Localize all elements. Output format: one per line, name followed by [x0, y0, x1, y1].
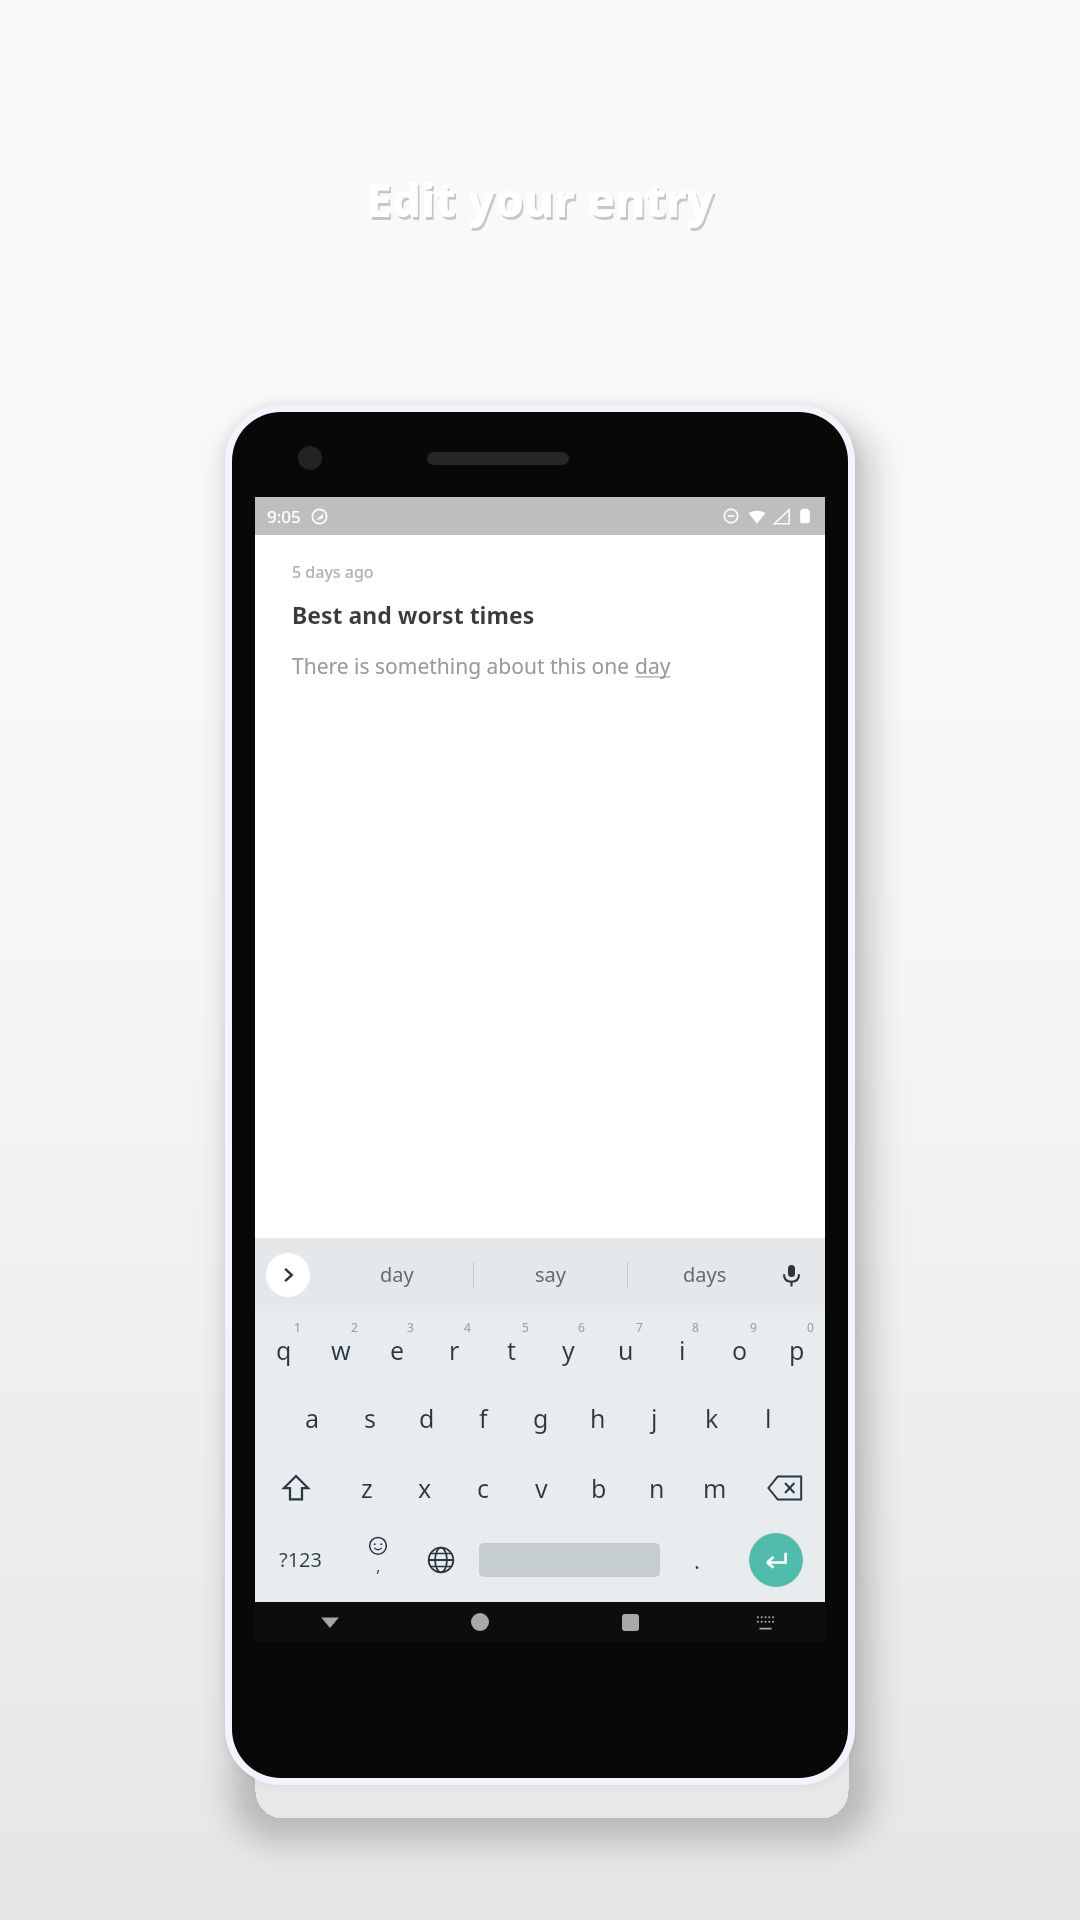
- staticText: 5 days ago: [292, 561, 374, 583]
- staticText: days: [683, 1261, 727, 1288]
- staticText: 1: [294, 1319, 301, 1335]
- button[interactable]: t: [483, 1317, 540, 1383]
- button[interactable]: day: [321, 1238, 473, 1311]
- button[interactable]: .: [667, 1523, 727, 1596]
- staticText: Edit your entry: [368, 171, 716, 234]
- button[interactable]: d: [398, 1383, 455, 1453]
- button[interactable]: More suggestions: [266, 1253, 310, 1297]
- staticText: m: [703, 1471, 727, 1505]
- button[interactable]: say: [474, 1238, 627, 1311]
- staticText: z: [361, 1471, 373, 1505]
- staticText: 2: [351, 1319, 358, 1335]
- button[interactable]: Recent apps: [555, 1602, 705, 1642]
- staticText: i: [679, 1333, 686, 1367]
- button[interactable]: q: [255, 1317, 312, 1383]
- button[interactable]: j: [626, 1383, 683, 1453]
- button[interactable]: days: [628, 1238, 781, 1311]
- button[interactable]: m: [686, 1453, 744, 1523]
- button[interactable]: v: [512, 1453, 570, 1523]
- staticText: 7: [636, 1319, 643, 1335]
- staticText: g: [533, 1401, 549, 1435]
- staticText: v: [535, 1471, 548, 1505]
- staticText: a: [305, 1401, 320, 1435]
- button[interactable]: f: [455, 1383, 512, 1453]
- staticText: y: [562, 1333, 575, 1367]
- button[interactable]: w: [312, 1317, 369, 1383]
- staticText: 9:05: [267, 505, 301, 528]
- button[interactable]: k: [683, 1383, 740, 1453]
- staticText: 6: [578, 1319, 585, 1335]
- staticText: t: [507, 1333, 517, 1367]
- staticText: Best and worst times: [292, 599, 535, 630]
- staticText: k: [705, 1401, 719, 1435]
- button[interactable]: n: [628, 1453, 686, 1523]
- staticText: ?123: [279, 1546, 322, 1573]
- staticText: 0: [807, 1319, 814, 1335]
- button[interactable]: Space: [472, 1523, 667, 1596]
- button[interactable]: h: [569, 1383, 626, 1453]
- staticText: day: [635, 652, 671, 681]
- staticText: o: [732, 1333, 748, 1367]
- button[interactable]: p: [768, 1317, 825, 1383]
- staticText: 4: [464, 1319, 471, 1335]
- button[interactable]: Shift: [255, 1453, 337, 1523]
- button[interactable]: Voice input: [771, 1255, 811, 1295]
- button[interactable]: z: [337, 1453, 396, 1523]
- button[interactable]: l: [740, 1383, 797, 1453]
- staticText: 9: [750, 1319, 757, 1335]
- button[interactable]: o: [711, 1317, 768, 1383]
- staticText: x: [418, 1471, 432, 1505]
- button[interactable]: Enter: [727, 1523, 825, 1596]
- staticText: d: [419, 1401, 435, 1435]
- button[interactable]: Switch input method: [705, 1602, 825, 1642]
- staticText: Edit your entry: [366, 168, 714, 231]
- button[interactable]: r: [426, 1317, 483, 1383]
- staticText: h: [590, 1401, 606, 1435]
- button[interactable]: Home: [405, 1602, 555, 1642]
- button[interactable]: g: [512, 1383, 569, 1453]
- button[interactable]: x: [396, 1453, 454, 1523]
- staticText: w: [331, 1333, 351, 1367]
- staticText: say: [535, 1261, 566, 1288]
- staticText: There is something about this one: [292, 652, 635, 681]
- staticText: p: [789, 1333, 805, 1367]
- staticText: 5: [522, 1319, 529, 1335]
- button[interactable]: c: [454, 1453, 512, 1523]
- staticText: ,: [376, 1554, 381, 1577]
- button[interactable]: ?123: [255, 1523, 346, 1596]
- staticText: 8: [692, 1319, 699, 1335]
- button[interactable]: Hide keyboard: [255, 1602, 405, 1642]
- staticText: s: [364, 1401, 376, 1435]
- button[interactable]: y: [540, 1317, 597, 1383]
- staticText: .: [694, 1545, 700, 1575]
- staticText: f: [479, 1401, 488, 1435]
- staticText: b: [591, 1471, 607, 1505]
- staticText: u: [618, 1333, 634, 1367]
- staticText: j: [651, 1401, 658, 1435]
- staticText: l: [765, 1401, 772, 1435]
- button[interactable]: i: [654, 1317, 711, 1383]
- staticText: e: [390, 1333, 405, 1367]
- button[interactable]: Backspace: [744, 1453, 825, 1523]
- staticText: c: [477, 1471, 490, 1505]
- button[interactable]: u: [597, 1317, 654, 1383]
- button[interactable]: b: [570, 1453, 628, 1523]
- button[interactable]: 5 days ago: [255, 535, 825, 1238]
- button[interactable]: s: [341, 1383, 398, 1453]
- staticText: day: [380, 1261, 414, 1288]
- button[interactable]: a: [283, 1383, 341, 1453]
- staticText: 3: [407, 1319, 414, 1335]
- staticText: r: [449, 1333, 460, 1367]
- staticText: q: [276, 1333, 292, 1367]
- button[interactable]: Emoji and comma: [346, 1523, 409, 1596]
- button[interactable]: e: [369, 1317, 426, 1383]
- button[interactable]: Change keyboard language: [409, 1523, 472, 1596]
- staticText: n: [649, 1471, 665, 1505]
